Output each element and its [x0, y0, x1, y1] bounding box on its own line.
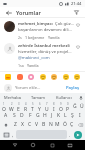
staticText: O	[59, 106, 63, 111]
button[interactable]: Profile photo	[4, 43, 15, 54]
button[interactable]: Ğ	[71, 102, 78, 111]
button[interactable]: H	[41, 111, 48, 120]
button[interactable]: J	[48, 111, 55, 120]
button[interactable]: Ö	[61, 120, 68, 129]
staticText: S	[13, 112, 16, 119]
button[interactable]: 7	[43, 102, 50, 111]
button[interactable]: Emoji 4	[51, 74, 57, 80]
button[interactable]: 8	[50, 102, 57, 111]
button[interactable]: 5	[29, 102, 36, 111]
button[interactable]: Voice input	[77, 93, 85, 102]
button[interactable]: C	[26, 120, 33, 129]
button[interactable]: 1 beğenme	[25, 35, 45, 40]
staticText: K	[57, 112, 61, 119]
staticText: 0	[67, 102, 69, 106]
staticText: Z	[14, 121, 17, 128]
button[interactable]: Ü	[78, 102, 85, 111]
staticText: 3	[18, 102, 20, 106]
staticText: G	[36, 112, 40, 119]
staticText: 9	[60, 102, 62, 106]
staticText: C	[28, 121, 32, 128]
button[interactable]: Yanıtla	[27, 63, 39, 68]
button[interactable]: M	[54, 120, 61, 129]
staticText: V	[35, 121, 39, 128]
button[interactable]: Filter	[72, 8, 81, 17]
staticText: başarılarının devamını diliyorum	[18, 27, 74, 33]
staticText: 1sa	[18, 63, 24, 68]
staticText: E	[17, 106, 20, 111]
button[interactable]: 3	[15, 102, 22, 111]
staticText: L	[64, 112, 67, 119]
button[interactable]: Kullanıcı	[51, 93, 77, 102]
button[interactable]: Emoji 2	[28, 74, 34, 80]
button[interactable]: Emoji 3	[40, 74, 46, 80]
button[interactable]: 9	[57, 102, 64, 111]
staticText: Yorum ekle...	[15, 85, 41, 91]
button[interactable]: Yorum ekle...	[15, 85, 65, 91]
button[interactable]: Back	[11, 141, 19, 149]
staticText: Tamam	[31, 95, 45, 100]
staticText: 1	[3, 102, 5, 106]
staticText: D	[20, 112, 24, 119]
staticText: 8	[53, 102, 55, 106]
button[interactable]: A	[2, 111, 10, 120]
button[interactable]: 6	[36, 102, 43, 111]
button[interactable]: Symbols	[2, 130, 11, 139]
button[interactable]: 1	[0, 102, 8, 111]
button[interactable]: Paylaş	[65, 85, 81, 91]
button[interactable]: Comma	[11, 130, 15, 139]
button[interactable]: K	[55, 111, 62, 120]
button[interactable]: Like	[74, 43, 81, 50]
button[interactable]: Emoji 5	[63, 74, 69, 80]
staticText: R	[24, 106, 28, 111]
button[interactable]: V	[33, 120, 40, 129]
button[interactable]: 4	[22, 102, 29, 111]
staticText: 7	[46, 102, 48, 106]
staticText: Ç	[70, 121, 74, 128]
button[interactable]: Home	[29, 141, 37, 149]
button[interactable]: L	[62, 111, 69, 120]
staticText: Ö	[63, 121, 67, 128]
button[interactable]: S	[10, 111, 18, 120]
button[interactable]: X	[19, 120, 26, 129]
staticText: 4	[25, 102, 27, 106]
button[interactable]: Emoji 6	[74, 74, 80, 80]
staticText: 5	[32, 102, 34, 106]
staticText: Kullanıcı	[56, 95, 72, 100]
button[interactable]: Emoji 1	[17, 74, 23, 80]
button[interactable]: Yanıtla	[48, 35, 60, 40]
staticText: A	[4, 112, 8, 119]
button[interactable]: Keyboard	[66, 141, 74, 149]
button[interactable]: Period	[68, 130, 72, 139]
staticText: .	[69, 132, 71, 138]
button[interactable]: D	[18, 111, 26, 120]
staticText: H	[43, 112, 47, 119]
button[interactable]: Backspace	[75, 120, 85, 129]
button[interactable]: Profile photo	[4, 21, 15, 32]
button[interactable]: B	[40, 120, 47, 129]
button[interactable]: Ş	[69, 111, 76, 120]
button[interactable]: N	[47, 120, 54, 129]
staticText: I	[79, 112, 81, 119]
button[interactable]: Like	[74, 21, 81, 28]
button[interactable]: Back	[4, 8, 13, 17]
button[interactable]: Emoji 0	[5, 74, 11, 80]
staticText: I	[53, 106, 55, 111]
button[interactable]: Send	[72, 130, 83, 139]
button[interactable]: Merhaba	[0, 93, 25, 102]
button[interactable]: Ç	[68, 120, 75, 129]
staticText: Yanıtla	[27, 63, 39, 68]
button[interactable]: Shift	[0, 120, 11, 129]
button[interactable]: I	[76, 111, 83, 120]
button[interactable]: Recents	[48, 141, 56, 149]
staticText: 6	[39, 102, 41, 106]
button[interactable]: 0	[64, 102, 71, 111]
button[interactable]: 2	[8, 102, 15, 111]
staticText: Ş	[71, 112, 74, 119]
staticText: @makineci_com	[18, 55, 50, 61]
button[interactable]: G	[34, 111, 41, 120]
button[interactable]: Tamam	[25, 93, 51, 102]
button[interactable]: Z	[11, 120, 19, 129]
button[interactable]: F	[26, 111, 34, 120]
